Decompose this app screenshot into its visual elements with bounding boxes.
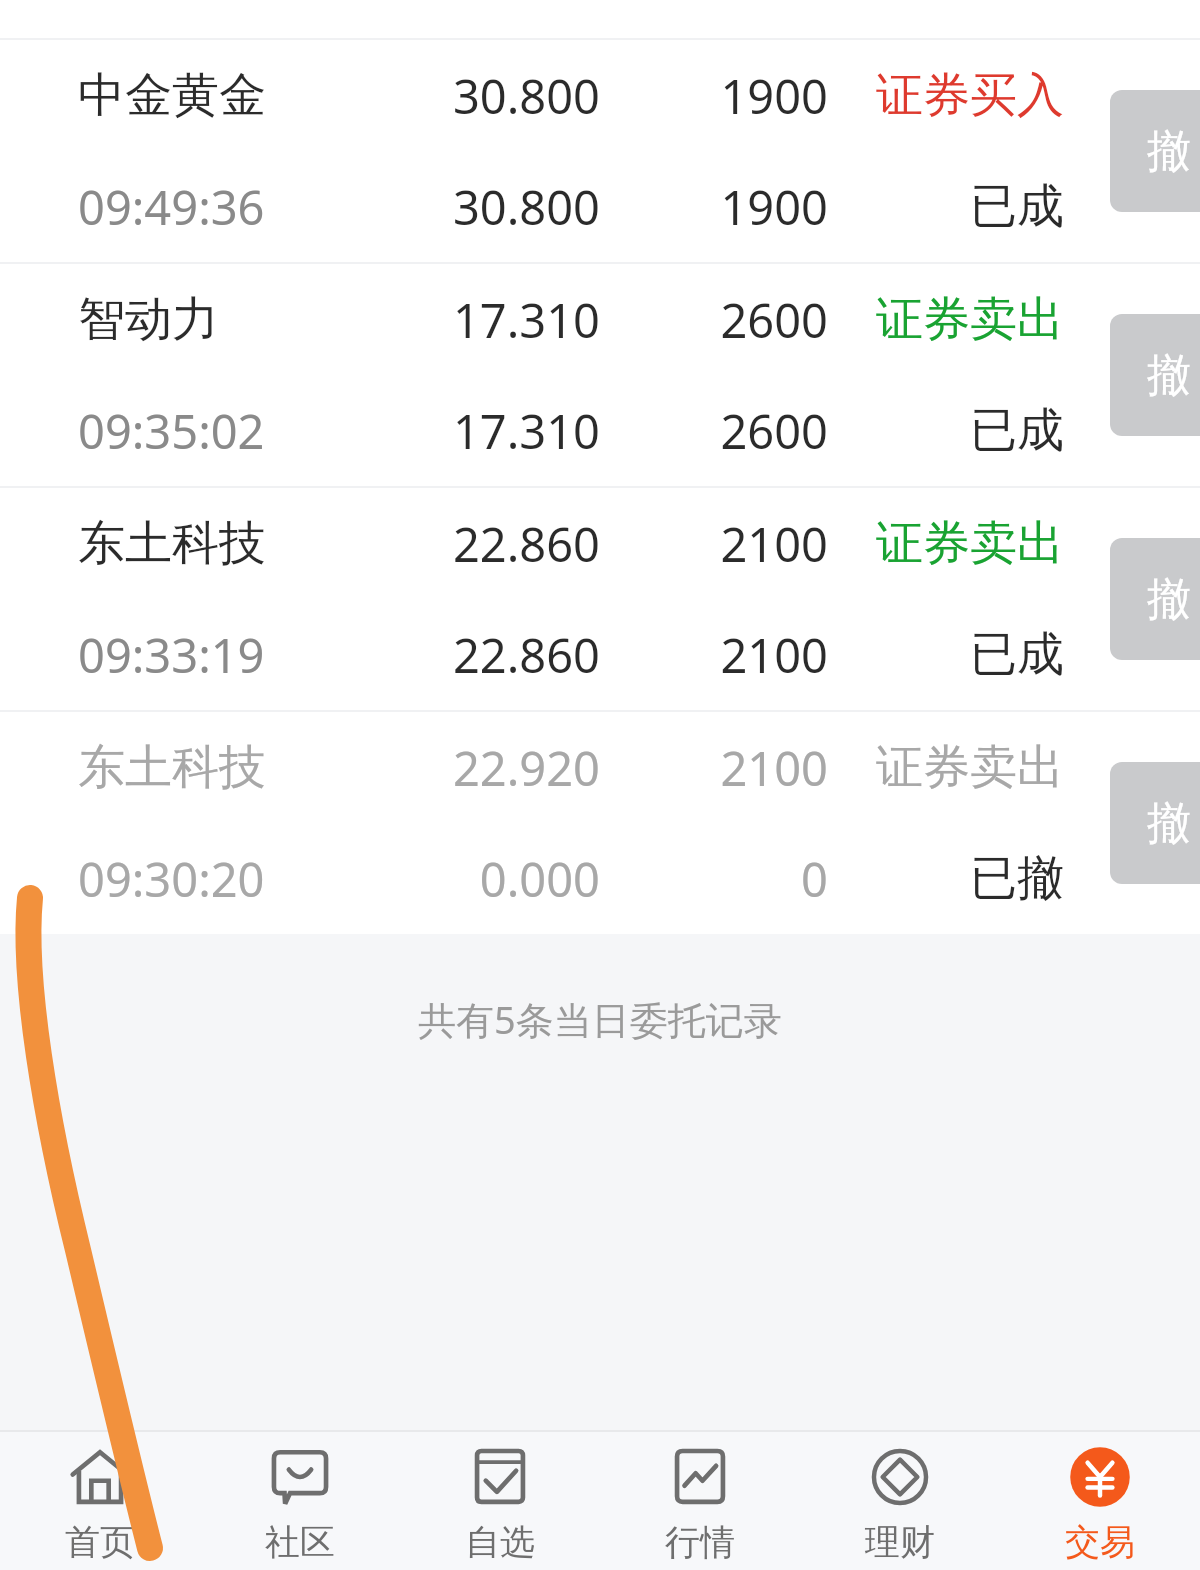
staticText: 已成 bbox=[874, 625, 1064, 684]
staticText: 1900 bbox=[628, 175, 828, 239]
button[interactable]: 智动力 bbox=[0, 264, 1200, 486]
staticText: 中金黄金 bbox=[78, 66, 408, 125]
staticText: 东土科技 bbox=[78, 514, 408, 573]
button[interactable]: 行情 bbox=[600, 1432, 800, 1570]
staticText: 0 bbox=[628, 847, 828, 911]
staticText: 1900 bbox=[628, 64, 828, 128]
staticText: 17.310 bbox=[408, 399, 600, 463]
staticText: 行情 bbox=[665, 1520, 735, 1564]
staticText: 2100 bbox=[628, 623, 828, 687]
button[interactable]: 东土科技 bbox=[0, 488, 1200, 710]
staticText: 首页 bbox=[65, 1520, 135, 1564]
staticText: 0.000 bbox=[408, 847, 600, 911]
staticText: 证券卖出 bbox=[874, 514, 1064, 573]
staticText: 2100 bbox=[628, 512, 828, 576]
button[interactable]: 理财 bbox=[800, 1432, 1000, 1570]
staticText: 证券卖出 bbox=[874, 738, 1064, 797]
staticText: 撤 bbox=[1147, 572, 1191, 627]
button[interactable]: 撤 bbox=[1110, 314, 1200, 436]
staticText: 2600 bbox=[628, 288, 828, 352]
staticText: 30.800 bbox=[408, 64, 600, 128]
button[interactable]: 首页 bbox=[0, 1432, 200, 1570]
staticText: 交易 bbox=[1065, 1520, 1135, 1564]
staticText: 22.860 bbox=[408, 512, 600, 576]
staticText: 证券买入 bbox=[874, 66, 1064, 125]
button[interactable]: 撤 bbox=[1110, 538, 1200, 660]
staticText: 证券卖出 bbox=[874, 290, 1064, 349]
staticText: 理财 bbox=[865, 1520, 935, 1564]
button[interactable]: 撤 bbox=[1110, 762, 1200, 884]
staticText: 社区 bbox=[265, 1520, 335, 1564]
button[interactable]: 中金黄金 bbox=[0, 40, 1200, 262]
staticText: 22.920 bbox=[408, 736, 600, 800]
staticText: 09:35:02 bbox=[78, 399, 408, 463]
staticText: 已成 bbox=[874, 401, 1064, 460]
staticText: 2600 bbox=[628, 399, 828, 463]
button[interactable]: 东土科技 bbox=[0, 712, 1200, 934]
staticText: 17.310 bbox=[408, 288, 600, 352]
staticText: 09:30:20 bbox=[78, 847, 408, 911]
staticText: 撤 bbox=[1147, 124, 1191, 179]
staticText: 09:49:36 bbox=[78, 175, 408, 239]
staticText: 自选 bbox=[465, 1520, 535, 1564]
button[interactable]: 自选 bbox=[400, 1432, 600, 1570]
staticText: 东土科技 bbox=[78, 738, 408, 797]
staticText: 撤 bbox=[1147, 796, 1191, 851]
staticText: 2100 bbox=[628, 736, 828, 800]
staticText: 撤 bbox=[1147, 348, 1191, 403]
button[interactable]: 交易 bbox=[1000, 1432, 1200, 1570]
staticText: 已撤 bbox=[874, 849, 1064, 908]
staticText: 30.800 bbox=[408, 175, 600, 239]
button[interactable]: 撤 bbox=[1110, 90, 1200, 212]
staticText: 22.860 bbox=[408, 623, 600, 687]
staticText: 已成 bbox=[874, 177, 1064, 236]
staticText: 09:33:19 bbox=[78, 623, 408, 687]
staticText: 共有5条当日委托记录 bbox=[418, 993, 782, 1045]
button[interactable]: 社区 bbox=[200, 1432, 400, 1570]
staticText: 智动力 bbox=[78, 290, 408, 349]
